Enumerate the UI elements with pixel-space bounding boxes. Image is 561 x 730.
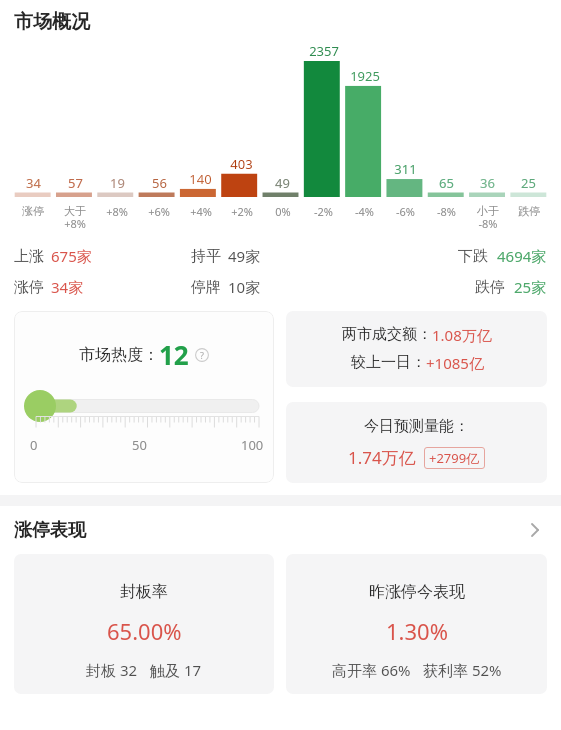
staticText: 大于 +8% bbox=[64, 204, 86, 231]
staticText: 0 bbox=[30, 436, 38, 454]
staticText: 下跌 bbox=[458, 247, 488, 266]
staticText: 1.08万亿 bbox=[432, 325, 492, 345]
staticText: 19 bbox=[110, 174, 125, 192]
staticText: 34家 bbox=[51, 277, 84, 297]
staticText: 50 bbox=[132, 436, 147, 454]
staticText: 获利率 52% bbox=[423, 660, 502, 680]
button[interactable]: 封板率 bbox=[14, 554, 274, 694]
staticText: 140 bbox=[189, 170, 212, 188]
staticText: 675家 bbox=[51, 246, 92, 266]
other: 查看更多 bbox=[525, 520, 545, 540]
staticText: 1925 bbox=[350, 67, 380, 85]
staticText: 1.74万亿 bbox=[348, 446, 416, 469]
staticText: -8% bbox=[437, 204, 456, 219]
staticText: +4% bbox=[190, 204, 212, 219]
staticText: 49 bbox=[275, 174, 290, 192]
staticText: 涨停 bbox=[14, 278, 44, 297]
staticText: 65.00% bbox=[107, 616, 182, 646]
staticText: 100 bbox=[241, 436, 264, 454]
staticText: +6% bbox=[148, 204, 170, 219]
staticText: 36 bbox=[480, 174, 495, 192]
staticText: 高开率 66% bbox=[332, 660, 411, 680]
staticText: 市场热度： bbox=[79, 345, 159, 365]
staticText: 市场概况 bbox=[14, 10, 90, 34]
staticText: 昨涨停今表现 bbox=[369, 582, 465, 602]
staticText: 57 bbox=[68, 174, 83, 192]
button[interactable]: 两市成交额： bbox=[286, 311, 547, 387]
staticText: 上涨 bbox=[14, 247, 44, 266]
staticText: 涨停表现 bbox=[14, 519, 86, 542]
staticText: 跌停 bbox=[518, 204, 540, 218]
staticText: 49家 bbox=[228, 246, 261, 266]
button[interactable]: 涨停表现 bbox=[0, 506, 561, 554]
staticText: 封板 32 bbox=[86, 660, 138, 680]
staticText: 65 bbox=[439, 174, 454, 192]
staticText: -4% bbox=[355, 204, 374, 219]
staticText: 封板率 bbox=[120, 582, 168, 602]
button[interactable]: 市场热度说明 bbox=[195, 348, 209, 362]
staticText: 触及 17 bbox=[150, 660, 202, 680]
staticText: 311 bbox=[394, 160, 417, 178]
staticText: +2799亿 bbox=[429, 449, 480, 467]
button[interactable]: 昨涨停今表现 bbox=[286, 554, 547, 694]
staticText: -6% bbox=[396, 204, 415, 219]
staticText: 今日预测量能： bbox=[364, 417, 469, 436]
staticText: 4694家 bbox=[497, 246, 547, 266]
staticText: +1085亿 bbox=[426, 353, 484, 373]
staticText: 25 bbox=[521, 174, 536, 192]
staticText: 34 bbox=[26, 174, 41, 192]
staticText: 1.30% bbox=[386, 616, 448, 646]
staticText: 跌停 bbox=[475, 278, 505, 297]
staticText: ? bbox=[200, 349, 204, 361]
staticText: 12 bbox=[159, 337, 189, 372]
staticText: 持平 bbox=[191, 247, 221, 266]
staticText: 0% bbox=[275, 204, 291, 219]
staticText: -2% bbox=[314, 204, 333, 219]
staticText: 小于 -8% bbox=[477, 204, 499, 231]
staticText: 涨停 bbox=[22, 204, 44, 218]
staticText: 两市成交额： bbox=[342, 325, 432, 344]
staticText: 25家 bbox=[514, 277, 547, 297]
staticText: 2357 bbox=[309, 42, 339, 60]
staticText: +8% bbox=[106, 204, 128, 219]
staticText: 403 bbox=[230, 155, 253, 173]
staticText: 10家 bbox=[228, 277, 261, 297]
staticText: 较上一日： bbox=[351, 353, 426, 372]
staticText: 56 bbox=[152, 174, 167, 192]
button[interactable]: 市场热度： bbox=[14, 311, 274, 483]
button[interactable]: 今日预测量能： bbox=[286, 402, 547, 483]
staticText: 停牌 bbox=[191, 278, 221, 297]
staticText: +2% bbox=[231, 204, 253, 219]
